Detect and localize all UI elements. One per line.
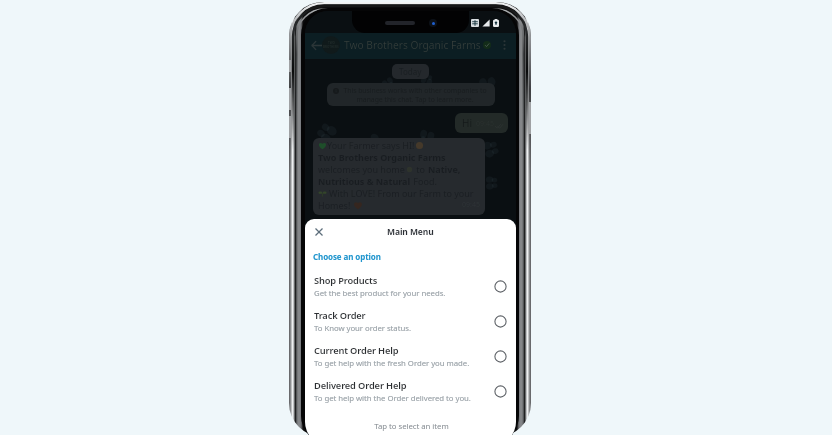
button[interactable]: More options: [496, 37, 512, 53]
staticText: To get help with the fresh Order you mad…: [314, 358, 470, 369]
staticText: To get help with the Order delivered to …: [314, 393, 471, 404]
staticText: BROTHERS: [323, 45, 339, 49]
staticText: TWO: [328, 41, 335, 45]
staticText: Choose an option: [313, 251, 381, 262]
staticText: Native,: [428, 163, 461, 175]
button[interactable]: Shop Products: [305, 269, 516, 304]
staticText: Main Menu: [387, 226, 434, 238]
button[interactable]: Delivered Order Help: [305, 374, 516, 409]
staticText: Current Order Help: [314, 344, 399, 357]
staticText: Two Brothers Organic Farms: [344, 38, 481, 52]
button[interactable]: Track Order: [305, 304, 516, 339]
button[interactable]: Close: [310, 223, 328, 241]
staticText: Delivered Order Help: [314, 379, 407, 392]
staticText: Two Brothers Organic Farms: [318, 151, 446, 163]
button[interactable]: Back: [307, 36, 325, 54]
staticText: Shop Products: [314, 274, 378, 287]
staticText: Food.: [411, 175, 437, 187]
staticText: Your Farmer says HI!: [327, 139, 415, 151]
staticText: Nutritious & Natural: [318, 175, 411, 187]
staticText: With LOVE! From our Farm to your: [329, 187, 474, 199]
staticText: welcomes you home: [318, 163, 405, 175]
staticText: Tap to select an item: [306, 421, 516, 432]
staticText: Get the best product for your needs.: [314, 288, 446, 299]
button[interactable]: Current Order Help: [305, 339, 516, 374]
staticText: Track Order: [314, 309, 366, 322]
staticText: Homes!: [318, 199, 353, 211]
staticText: Hi: [462, 116, 472, 130]
staticText: To Know your order status.: [314, 323, 411, 334]
